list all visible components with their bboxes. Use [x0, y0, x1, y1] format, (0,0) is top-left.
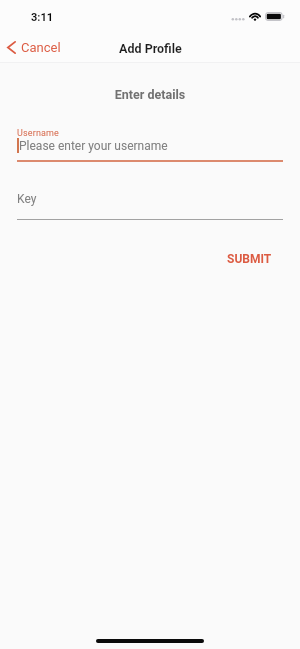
- staticText: Enter details: [0, 87, 300, 102]
- button[interactable]: Cancel: [0, 37, 69, 58]
- staticText: 3:11: [31, 11, 54, 24]
- button[interactable]: SUBMIT: [221, 247, 278, 271]
- staticText: Please enter your username: [19, 139, 168, 153]
- staticText: SUBMIT: [227, 252, 272, 266]
- staticText: Cancel: [21, 40, 61, 55]
- other: Battery full: [265, 12, 284, 21]
- other: Cellular signal: [231, 16, 246, 22]
- staticText: Add Profile: [119, 41, 182, 56]
- staticText: Username: [17, 128, 60, 139]
- button[interactable]: Key: [0, 192, 300, 220]
- other: Wi-Fi: [249, 11, 261, 21]
- staticText: Key: [17, 192, 37, 206]
- button[interactable]: Username: [0, 128, 300, 162]
